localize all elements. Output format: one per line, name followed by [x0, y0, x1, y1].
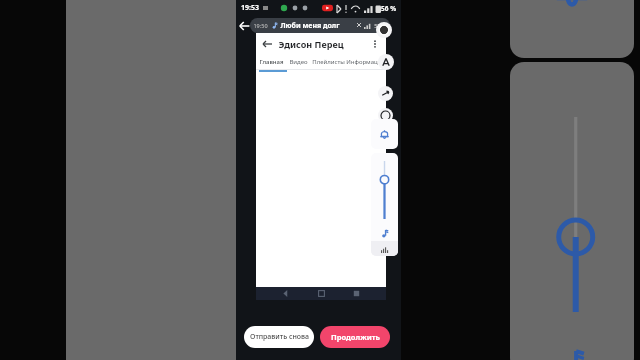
button[interactable]: Back — [238, 20, 250, 32]
staticText: 56 % — [381, 4, 396, 13]
button[interactable]: Record — [376, 22, 392, 38]
staticText: Продолжить — [331, 332, 380, 342]
button[interactable]: Видео — [286, 55, 311, 69]
button[interactable]: Help — [378, 108, 393, 123]
button[interactable]: Плейлисты — [311, 55, 345, 69]
button[interactable]: 19:50 — [253, 18, 387, 33]
staticText: 57 % — [374, 22, 387, 29]
staticText: Плейлисты — [312, 58, 345, 66]
button[interactable]: Recents — [350, 287, 363, 300]
button[interactable]: Продолжить — [320, 326, 390, 348]
staticText: 19:50 — [253, 22, 268, 29]
button[interactable]: Back — [261, 38, 273, 50]
button[interactable]: Главная — [256, 55, 286, 69]
staticText: Видео — [289, 58, 308, 66]
button[interactable]: Brush — [378, 86, 393, 101]
staticText: Люби меня долг — [280, 21, 340, 31]
button[interactable]: Home — [315, 287, 328, 300]
button[interactable]: More options — [369, 38, 381, 50]
button[interactable]: Notifications — [371, 119, 398, 149]
button[interactable]: Информац — [345, 55, 378, 69]
staticText: 19:53 — [241, 3, 259, 13]
button[interactable]: Back — [279, 287, 292, 300]
staticText: Главная — [259, 58, 284, 66]
button[interactable]: Отправить снова — [244, 326, 314, 348]
button[interactable]: Volume slider — [371, 153, 398, 225]
button[interactable]: Equalizer — [371, 241, 398, 256]
button[interactable]: Text — [378, 54, 394, 70]
staticText: Эдисон Перец — [278, 38, 344, 50]
staticText: Отправить снова — [250, 332, 309, 342]
staticText: Информац — [346, 58, 378, 66]
